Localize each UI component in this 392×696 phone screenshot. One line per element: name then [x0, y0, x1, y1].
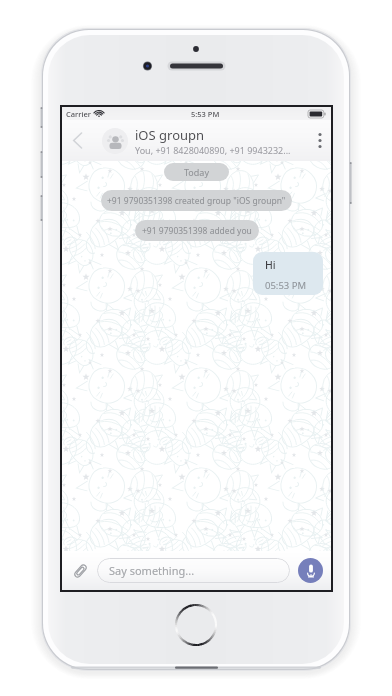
button[interactable]: More options	[309, 120, 331, 161]
button[interactable]: Hi	[253, 252, 323, 295]
button[interactable]: Back	[62, 120, 92, 161]
staticText: iOS groupn	[135, 126, 205, 144]
staticText: You, +91 8428040890, +91 9943232...	[135, 144, 291, 156]
staticText: +91 9790351398 added you	[142, 225, 252, 237]
button[interactable]: Attach file	[68, 557, 93, 585]
staticText: Say something...	[109, 563, 195, 578]
staticText: Today	[184, 166, 209, 178]
staticText: Carrier	[66, 109, 91, 119]
staticText: Hi	[265, 258, 276, 272]
staticText: 05:53 PM	[265, 279, 307, 292]
staticText: +91 9790351398 created group "iOS groupn…	[107, 195, 286, 207]
button[interactable]: Record voice message	[298, 558, 323, 583]
staticText: 5:53 PM	[191, 109, 220, 119]
button[interactable]: Say something...	[97, 558, 290, 583]
